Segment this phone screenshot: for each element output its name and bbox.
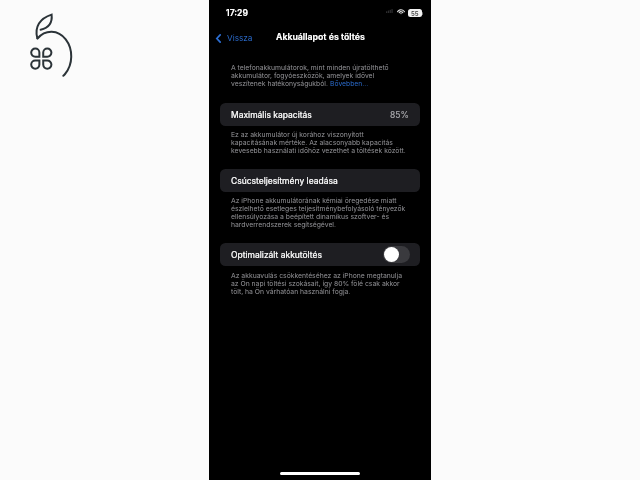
button[interactable]: Maximális kapacitás xyxy=(220,103,420,126)
staticText: észlelhető esetleges teljesítménybefolyá… xyxy=(231,204,406,212)
staticText: 85% xyxy=(390,110,409,120)
button[interactable]: Csúcsteljesítmény leadása xyxy=(220,169,420,192)
staticText: Az akkuavulás csökkentéséhez az iPhone m… xyxy=(231,271,402,279)
staticText: kevesebb használati időhöz vezethet a tö… xyxy=(231,146,406,154)
staticText: Akkuállapot és töltés xyxy=(276,31,365,42)
staticText: Maximális kapacitás xyxy=(231,110,312,120)
staticText: Bővebben... xyxy=(330,79,369,87)
staticText: Ez az akkumulátor új korához viszonyítot… xyxy=(231,130,364,138)
staticText: Optimalizált akkutöltés xyxy=(231,250,322,260)
staticText: Vissza xyxy=(227,33,253,43)
staticText: hardverrendszerek segítségével. xyxy=(231,220,336,228)
staticText: 55 xyxy=(411,10,419,17)
staticText: Az iPhone akkumulátorának kémiai öregedé… xyxy=(231,196,397,204)
staticText: 17:29 xyxy=(226,8,248,18)
button[interactable]: Vissza xyxy=(213,30,256,46)
staticText: az Ön napi töltési szokásait, így 80% fö… xyxy=(231,279,400,287)
other: Apple command logo xyxy=(27,13,73,79)
staticText: Csúcsteljesítmény leadása xyxy=(231,176,338,186)
button[interactable]: Optimalizált akkutöltés xyxy=(220,243,420,266)
button[interactable]: Optimalizált akkutöltés kapcsoló xyxy=(383,246,410,263)
staticText: akkumulátor, fogyóeszközök, amelyek időv… xyxy=(231,71,375,79)
staticText: kapacitásának mértéke. Az alacsonyabb ka… xyxy=(231,138,393,146)
staticText: veszítenek hatékonyságukból. xyxy=(231,79,330,87)
staticText: ellensúlyozása a beépített dinamikus szo… xyxy=(231,212,389,220)
staticText: A telefonakkumulátorok, mint minden újra… xyxy=(231,63,389,71)
staticText: tölt, ha Ön várhatóan használni fogja. xyxy=(231,287,351,295)
